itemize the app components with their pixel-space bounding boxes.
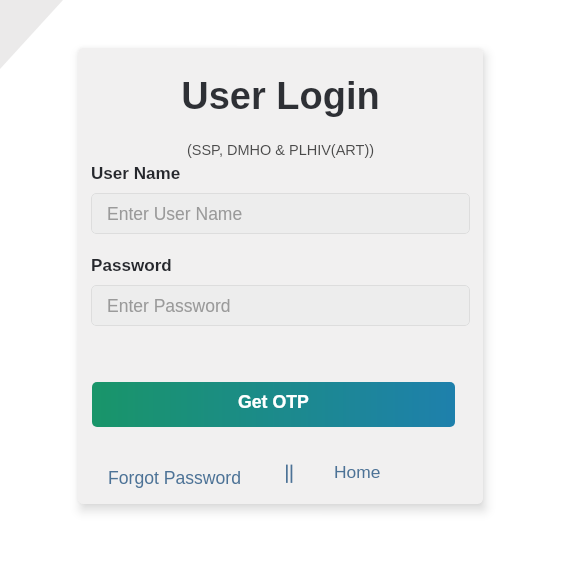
- staticText: User Login: [78, 75, 483, 117]
- staticText: Password: [91, 256, 172, 275]
- staticText: Forgot Password: [108, 468, 241, 488]
- staticText: Get OTP: [238, 392, 309, 412]
- staticText: Enter Password: [107, 296, 231, 316]
- staticText: Enter User Name: [107, 204, 243, 224]
- staticText: User Name: [91, 164, 181, 183]
- button[interactable]: Forgot Password: [100, 460, 249, 496]
- button[interactable]: Home: [326, 454, 389, 489]
- staticText: (SSP, DMHO & PLHIV(ART)): [78, 142, 483, 158]
- button[interactable]: Get OTP: [92, 382, 455, 427]
- button[interactable]: Enter Password: [91, 285, 470, 326]
- staticText: Home: [334, 462, 381, 481]
- button[interactable]: Enter User Name: [91, 193, 470, 234]
